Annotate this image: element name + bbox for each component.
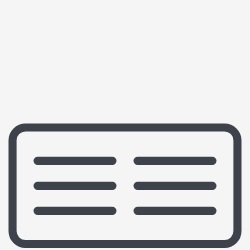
button[interactable]: Subtitles [0,0,250,250]
